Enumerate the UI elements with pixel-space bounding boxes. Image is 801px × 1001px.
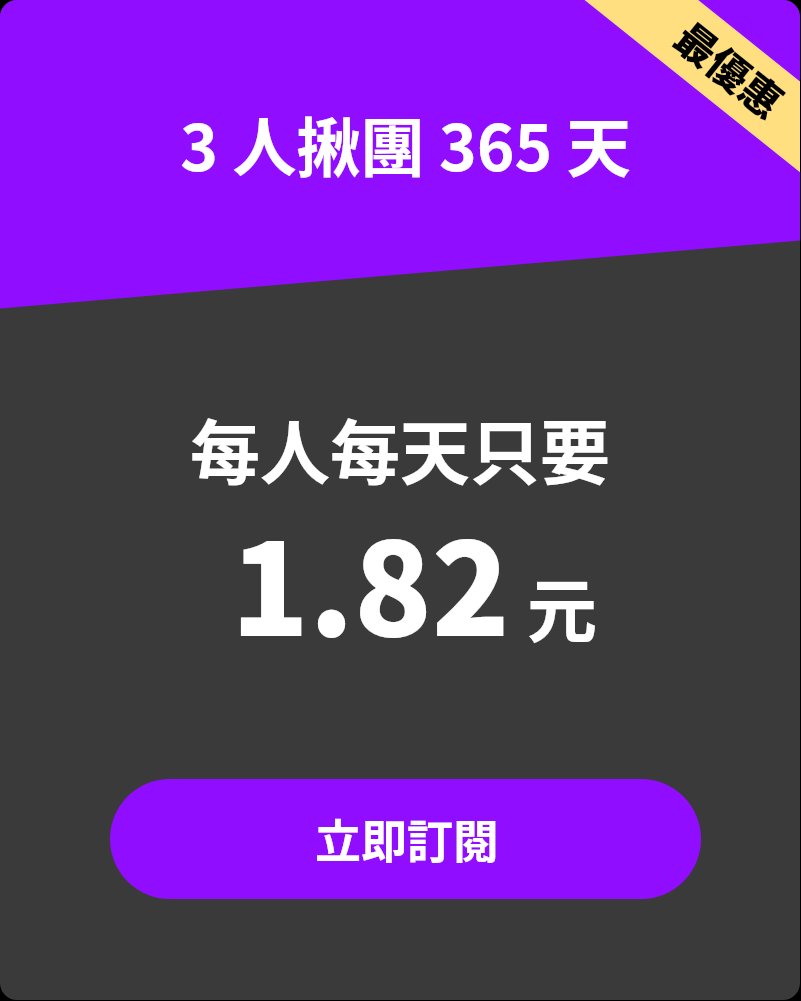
staticText: 每人每天只要: [190, 398, 610, 499]
staticText: 立即訂閱: [315, 805, 499, 872]
other: 最優惠 best offer: [549, 0, 800, 221]
staticText: 1.82: [231, 488, 510, 673]
button[interactable]: 立即訂閱: [110, 779, 701, 899]
staticText: 3 人揪團 365 天: [180, 97, 631, 190]
staticText: 最優惠: [664, 6, 797, 129]
staticText: 元: [527, 556, 597, 657]
